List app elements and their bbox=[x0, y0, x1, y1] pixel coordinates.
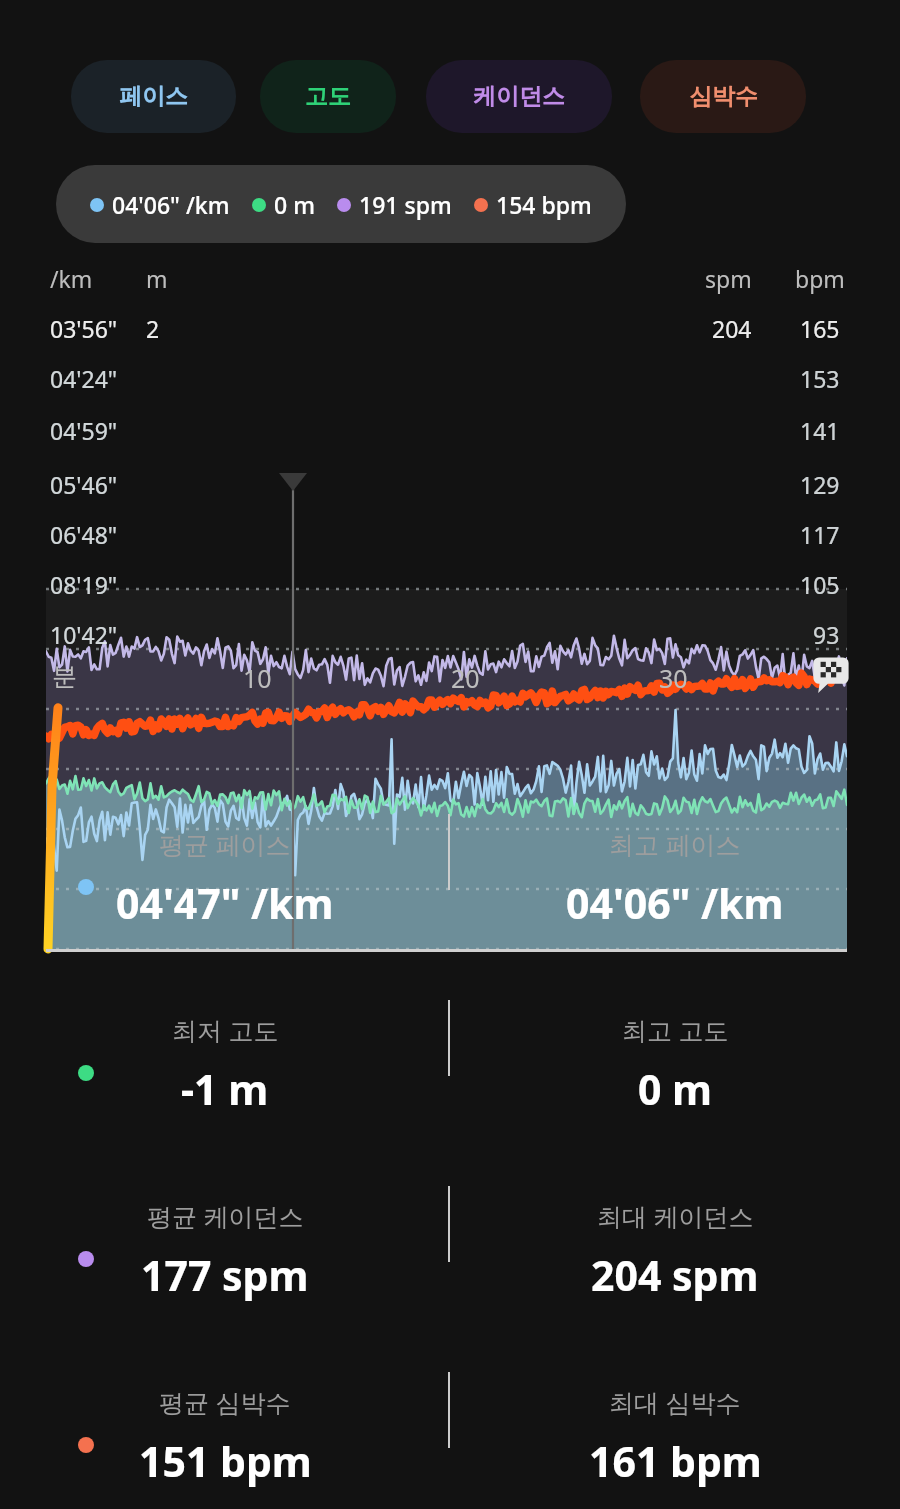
staticText: 08'19" bbox=[50, 569, 118, 600]
button[interactable]: 케이던스 bbox=[426, 60, 612, 133]
button[interactable]: 최고 고도 bbox=[450, 979, 900, 1117]
staticText: 04'59" bbox=[50, 415, 118, 446]
staticText: 141 bbox=[800, 415, 840, 446]
staticText: 30 bbox=[659, 661, 688, 695]
staticText: 최대 케이던스 bbox=[597, 1199, 754, 1233]
staticText: 04'06" /km bbox=[112, 189, 230, 220]
staticText: 10 bbox=[243, 661, 272, 695]
staticText: 최고 고도 bbox=[622, 1013, 729, 1047]
staticText: 177 spm bbox=[141, 1247, 309, 1303]
staticText: 105 bbox=[800, 569, 840, 600]
staticText: m bbox=[146, 263, 168, 294]
staticText: /km bbox=[50, 263, 93, 294]
staticText: 페이스 bbox=[119, 82, 188, 111]
staticText: 0 m bbox=[638, 1061, 713, 1117]
staticText: 153 bbox=[800, 363, 840, 394]
button[interactable]: 평균 페이스 bbox=[0, 793, 450, 931]
staticText: 최고 페이스 bbox=[609, 827, 741, 861]
staticText: 93 bbox=[813, 619, 840, 650]
staticText: 204 bbox=[712, 313, 752, 344]
staticText: 심박수 bbox=[689, 82, 758, 111]
button[interactable]: Finish bbox=[811, 655, 851, 695]
staticText: 20 bbox=[451, 661, 480, 695]
staticText: 0 m bbox=[274, 189, 315, 220]
button[interactable]: 페이스 bbox=[71, 60, 236, 133]
staticText: 최저 고도 bbox=[172, 1013, 279, 1047]
staticText: 평균 케이던스 bbox=[147, 1199, 304, 1233]
staticText: 평균 심박수 bbox=[159, 1385, 291, 1419]
staticText: 191 spm bbox=[359, 189, 452, 220]
staticText: spm bbox=[705, 263, 752, 294]
staticText: 2 bbox=[146, 313, 160, 344]
staticText: 케이던스 bbox=[473, 82, 565, 111]
button[interactable]: 최저 고도 bbox=[0, 979, 450, 1117]
staticText: 04'24" bbox=[50, 363, 118, 394]
staticText: 평균 페이스 bbox=[159, 827, 291, 861]
staticText: 165 bbox=[800, 313, 840, 344]
staticText: 고도 bbox=[305, 82, 351, 111]
staticText: 161 bpm bbox=[589, 1433, 762, 1489]
button[interactable]: 평균 심박수 bbox=[0, 1351, 450, 1489]
staticText: bpm bbox=[795, 263, 845, 294]
button[interactable]: 평균 케이던스 bbox=[0, 1165, 450, 1303]
staticText: 최대 심박수 bbox=[609, 1385, 741, 1419]
staticText: 04'47" /km bbox=[116, 875, 334, 931]
staticText: -1 m bbox=[181, 1061, 269, 1117]
button[interactable]: 최고 페이스 bbox=[450, 793, 900, 931]
button[interactable]: 최대 케이던스 bbox=[450, 1165, 900, 1303]
staticText: 204 spm bbox=[591, 1247, 759, 1303]
staticText: 154 bpm bbox=[496, 189, 592, 220]
staticText: 04'06" /km bbox=[566, 875, 784, 931]
staticText: 117 bbox=[800, 519, 840, 550]
staticText: 129 bbox=[800, 469, 840, 500]
staticText: 06'48" bbox=[50, 519, 118, 550]
button[interactable]: 심박수 bbox=[640, 60, 806, 133]
staticText: 05'46" bbox=[50, 469, 118, 500]
button[interactable]: 고도 bbox=[260, 60, 396, 133]
staticText: 분 bbox=[52, 661, 77, 692]
staticText: 03'56" bbox=[50, 313, 118, 344]
staticText: 10'42" bbox=[50, 619, 118, 650]
button[interactable]: 04'06" /km bbox=[56, 165, 626, 243]
staticText: 151 bpm bbox=[139, 1433, 312, 1489]
button[interactable]: 최대 심박수 bbox=[450, 1351, 900, 1489]
